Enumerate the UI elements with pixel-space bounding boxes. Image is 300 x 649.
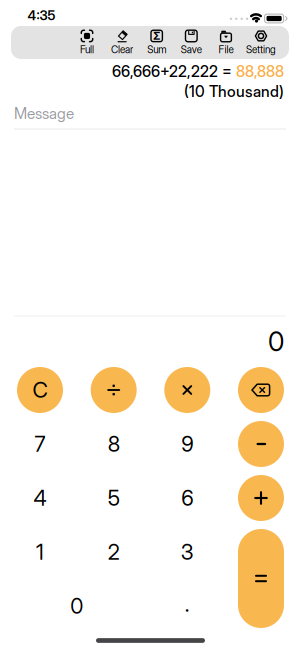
button[interactable]: 1 bbox=[17, 529, 63, 575]
button[interactable]: 8 bbox=[91, 421, 137, 467]
staticText: C bbox=[32, 377, 47, 403]
staticText: 8 bbox=[108, 431, 120, 457]
button[interactable]: Minus bbox=[238, 421, 284, 467]
button[interactable]: Divide bbox=[91, 367, 137, 413]
staticText: . bbox=[185, 591, 190, 617]
staticText: 66,666+22,222 = bbox=[112, 62, 236, 81]
staticText: Full bbox=[80, 43, 94, 56]
staticText: 9 bbox=[181, 431, 193, 457]
staticText: 4:35 bbox=[27, 7, 55, 23]
button[interactable]: Equals bbox=[238, 529, 284, 628]
button[interactable]: Clear bbox=[17, 367, 63, 413]
button[interactable]: 4 bbox=[17, 475, 63, 521]
button[interactable]: File bbox=[206, 27, 246, 58]
button[interactable]: Save bbox=[171, 27, 211, 58]
staticText: Clear bbox=[111, 43, 133, 56]
button[interactable]: 5 bbox=[91, 475, 137, 521]
staticText: 4 bbox=[33, 485, 46, 511]
button[interactable]: 6 bbox=[164, 475, 210, 521]
staticText: Save bbox=[181, 43, 202, 56]
staticText: 0 bbox=[70, 593, 83, 619]
staticText: 5 bbox=[108, 485, 120, 511]
button[interactable]: . bbox=[164, 581, 210, 627]
staticText: Message bbox=[14, 104, 74, 123]
button[interactable]: Setting bbox=[241, 27, 281, 58]
staticText: File bbox=[218, 43, 233, 56]
button[interactable]: Multiply bbox=[164, 367, 210, 413]
button[interactable]: 7 bbox=[17, 421, 63, 467]
staticText: 3 bbox=[181, 539, 194, 565]
staticText: 6 bbox=[181, 485, 193, 511]
button[interactable]: Clear bbox=[102, 27, 142, 58]
button[interactable]: 2 bbox=[91, 529, 137, 575]
button[interactable]: Plus bbox=[238, 475, 284, 521]
button[interactable]: 3 bbox=[164, 529, 210, 575]
staticText: 2 bbox=[108, 539, 120, 565]
staticText: Σ bbox=[153, 29, 160, 42]
staticText: 1 bbox=[36, 539, 44, 565]
button[interactable]: Σ bbox=[137, 27, 177, 58]
button[interactable]: 9 bbox=[164, 421, 210, 467]
staticText: 0 bbox=[268, 325, 284, 358]
staticText: Setting bbox=[246, 43, 276, 56]
button[interactable]: Delete bbox=[238, 367, 284, 413]
staticText: Sum bbox=[147, 43, 166, 56]
staticText: 88,888 bbox=[236, 62, 284, 81]
staticText: (10 Thousand) bbox=[184, 82, 284, 101]
button[interactable]: Full bbox=[67, 27, 107, 58]
button[interactable]: 0 bbox=[54, 583, 100, 629]
staticText: 7 bbox=[34, 431, 45, 457]
